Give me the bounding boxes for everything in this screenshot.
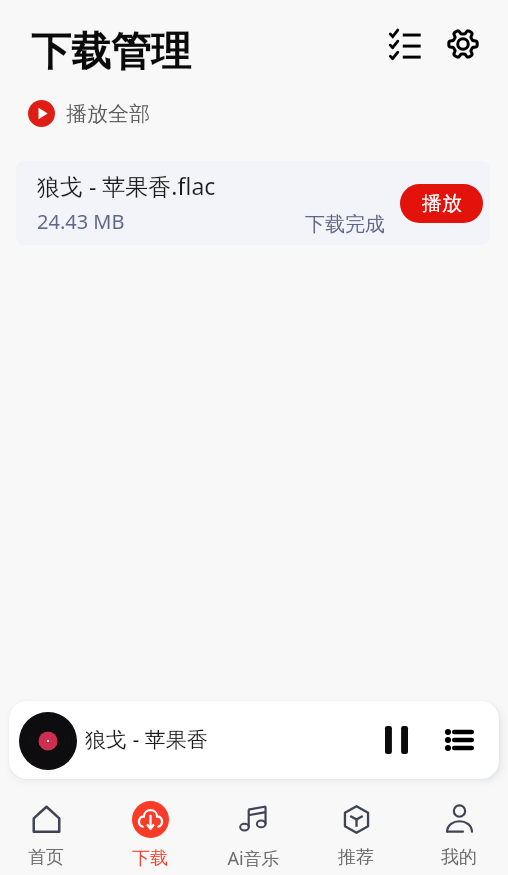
staticText: 我的: [441, 846, 477, 869]
staticText: 狼戈 - 苹果香.flac: [37, 170, 216, 201]
button[interactable]: 推荐: [306, 797, 406, 869]
button[interactable]: Pause: [370, 714, 422, 766]
button[interactable]: Ai音乐: [203, 797, 303, 869]
button[interactable]: 狼戈 - 苹果香: [9, 701, 499, 779]
staticText: 下载: [132, 847, 168, 869]
staticText: 24.43 MB: [37, 208, 125, 235]
staticText: Ai音乐: [227, 846, 280, 869]
button[interactable]: 播放全部: [24, 96, 154, 131]
button[interactable]: Playlist: [433, 714, 485, 766]
staticText: 狼戈 - 苹果香: [85, 725, 208, 754]
staticText: 下载管理: [31, 26, 191, 76]
button[interactable]: 我的: [409, 797, 508, 869]
button[interactable]: Multi select: [382, 21, 427, 66]
staticText: 首页: [28, 846, 64, 869]
staticText: 播放: [422, 191, 462, 216]
button[interactable]: 下载: [100, 797, 200, 869]
button[interactable]: 狼戈 - 苹果香.flac: [16, 161, 490, 245]
button[interactable]: Settings: [440, 21, 485, 66]
staticText: 推荐: [338, 846, 374, 869]
button[interactable]: 播放: [400, 184, 483, 223]
button[interactable]: 首页: [0, 797, 96, 869]
staticText: 下载完成: [305, 212, 385, 237]
staticText: 播放全部: [66, 101, 150, 127]
